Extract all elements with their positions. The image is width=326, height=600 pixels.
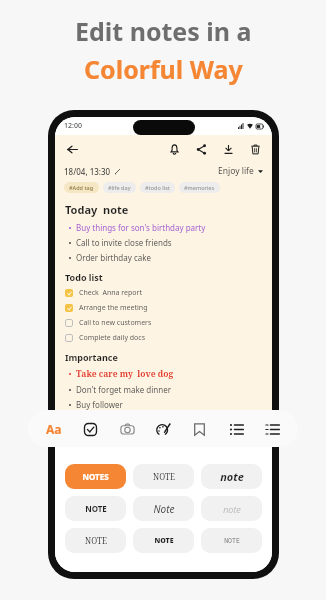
button[interactable]: Enjoy life: [218, 165, 263, 177]
staticText: Edit notes in a: [75, 14, 252, 48]
staticText: #Add tag: [69, 184, 94, 191]
button[interactable]: Download: [220, 141, 236, 157]
button[interactable]: Bookmark: [187, 417, 211, 441]
button[interactable]: NOTE: [65, 496, 126, 521]
staticText: Colorful Way: [84, 52, 243, 86]
button[interactable]: NOTE: [133, 528, 194, 553]
staticText: #memories: [184, 184, 215, 191]
staticText: Buy things for son's birthday party: [76, 222, 206, 233]
staticText: NOTE: [85, 503, 107, 514]
button[interactable]: Back: [64, 141, 80, 157]
staticText: NOTE: [85, 535, 107, 546]
button[interactable]: Arrange the meeting: [65, 303, 262, 313]
button[interactable]: Share: [193, 141, 209, 157]
staticText: NOTE: [224, 536, 240, 545]
button[interactable]: Numbered list: [260, 417, 284, 441]
staticText: Don't forget make dinner: [76, 384, 172, 395]
button[interactable]: Call to new customers: [65, 318, 262, 328]
button[interactable]: Checklist: [78, 417, 102, 441]
button[interactable]: Complete daily docs: [65, 333, 262, 343]
button[interactable]: #memories: [179, 182, 220, 193]
staticText: Importance: [65, 351, 118, 363]
staticText: Todo list: [65, 271, 103, 283]
staticText: #todo list: [145, 184, 170, 191]
button[interactable]: Text style: [42, 417, 66, 441]
button[interactable]: #todo list: [140, 182, 175, 193]
button[interactable]: Bulleted list: [224, 417, 248, 441]
staticText: note: [223, 503, 241, 515]
staticText: Call to invite close friends: [76, 237, 172, 248]
button[interactable]: NOTE: [201, 528, 262, 553]
staticText: NOTE: [154, 536, 174, 546]
button[interactable]: #Add tag: [64, 182, 99, 193]
staticText: NOTE: [153, 471, 175, 482]
staticText: note: [220, 469, 244, 484]
staticText: 12:00: [64, 121, 82, 131]
button[interactable]: Delete: [247, 141, 263, 157]
staticText: Complete daily docs: [79, 333, 146, 343]
button[interactable]: NOTE: [65, 528, 126, 553]
staticText: Order birthday cake: [76, 252, 152, 263]
staticText: #life day: [108, 184, 131, 191]
button[interactable]: Check Anna report: [65, 288, 262, 298]
button[interactable]: Notifications: [166, 141, 182, 157]
staticText: Enjoy life: [218, 165, 254, 177]
staticText: Call to new customers: [79, 318, 152, 328]
button[interactable]: #life day: [103, 182, 136, 193]
button[interactable]: NOTE: [133, 464, 194, 489]
staticText: Today note: [65, 202, 129, 217]
button[interactable]: NOTES: [65, 464, 126, 489]
staticText: Take care my love dog: [76, 368, 174, 380]
staticText: Arrange the meeting: [79, 303, 148, 313]
button[interactable]: Camera: [115, 417, 139, 441]
staticText: Note: [153, 502, 175, 516]
button[interactable]: Color palette: [151, 417, 175, 441]
staticText: Aa: [46, 421, 62, 437]
staticText: 18/04, 13:30: [64, 166, 111, 177]
button[interactable]: note: [201, 496, 262, 521]
button[interactable]: note: [201, 464, 262, 489]
button[interactable]: Note: [133, 496, 194, 521]
staticText: Buy follower: [76, 399, 123, 410]
staticText: Check Anna report: [79, 288, 142, 298]
staticText: NOTES: [82, 471, 109, 482]
